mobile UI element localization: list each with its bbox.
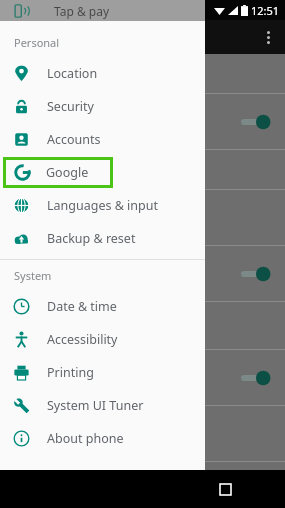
staticText: System <box>14 268 52 283</box>
button[interactable] <box>0 94 285 150</box>
staticText: System UI Tuner <box>47 397 144 414</box>
button[interactable] <box>0 406 285 462</box>
staticText: Tap & pay <box>54 3 110 19</box>
button[interactable]: Recents <box>203 470 247 508</box>
button[interactable] <box>0 350 285 406</box>
button[interactable]: Printing <box>0 356 205 389</box>
staticText: Date & time <box>47 298 117 315</box>
button[interactable]: More options <box>257 26 279 48</box>
button[interactable]: About phone <box>0 422 205 455</box>
button[interactable]: Accessibility <box>0 323 205 356</box>
button[interactable]: Security <box>0 90 205 123</box>
staticText: Accessibility <box>47 331 118 348</box>
button[interactable]: Languages & input <box>0 189 205 222</box>
button[interactable] <box>0 302 285 350</box>
staticText: 12:51 <box>251 3 280 18</box>
staticText: Personal <box>14 35 60 50</box>
button[interactable]: Tap & pay <box>0 0 205 21</box>
staticText: Security <box>47 98 94 115</box>
button[interactable] <box>0 190 285 246</box>
button[interactable]: Location <box>0 57 205 90</box>
staticText: Accounts <box>47 131 101 148</box>
button[interactable]: Backup & reset <box>0 222 205 255</box>
button[interactable] <box>0 150 285 190</box>
button[interactable]: System UI Tuner <box>0 389 205 422</box>
staticText: Languages & input <box>47 197 158 214</box>
staticText: Printing <box>47 364 94 381</box>
staticText: About phone <box>47 430 124 447</box>
button[interactable]: Google <box>6 160 110 185</box>
staticText: Backup & reset <box>47 230 136 247</box>
button[interactable] <box>0 246 285 302</box>
button[interactable]: Date & time <box>0 290 205 323</box>
button[interactable]: Accounts <box>0 123 205 156</box>
button[interactable] <box>0 54 285 94</box>
staticText: Google <box>46 164 89 181</box>
staticText: Location <box>47 65 98 82</box>
